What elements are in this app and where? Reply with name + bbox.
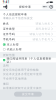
button[interactable]: 代他人办理 bbox=[0, 47, 56, 52]
staticText: 请输入手机号 bbox=[32, 38, 50, 41]
staticText: 仅在本次业务办理过程中使用 bbox=[3, 73, 42, 76]
staticText: 详情请查阅协议条款 bbox=[3, 95, 30, 98]
button[interactable]: 本人办理 bbox=[0, 42, 56, 47]
staticText: 手机号码 bbox=[3, 38, 15, 41]
staticText: 姓名 bbox=[3, 22, 9, 25]
staticText: 不会用于其他用途 bbox=[3, 77, 27, 80]
staticText: 请确认以下信息后提交 bbox=[3, 16, 33, 20]
staticText: 撤回 bbox=[3, 82, 9, 85]
staticText: 请输入证件号码 bbox=[29, 32, 50, 36]
button[interactable]: 证件号码 bbox=[0, 32, 56, 37]
button[interactable]: Close bbox=[49, 5, 53, 8]
button[interactable]: 姓名 bbox=[0, 21, 56, 26]
button[interactable]: More options bbox=[43, 5, 47, 8]
staticText: 9:41 bbox=[3, 0, 10, 4]
staticText: 撤回后不影响此前的处理 bbox=[3, 91, 36, 94]
staticText: 提交后信息将用于身份核验 bbox=[3, 68, 39, 72]
staticText: 如需撤回授权可在设置中操作 bbox=[3, 86, 42, 90]
button[interactable]: Share bbox=[2, 4, 8, 9]
staticText: 证件号码 bbox=[3, 32, 15, 36]
button[interactable]: 手机号码 bbox=[0, 37, 56, 42]
staticText: 授权申请 bbox=[19, 5, 31, 8]
staticText: 说明 bbox=[3, 64, 9, 67]
staticText: 本人办理 bbox=[7, 43, 19, 46]
button[interactable]: 证件类型 bbox=[0, 26, 56, 31]
staticText: 证件类型 bbox=[3, 27, 15, 30]
staticText: 授权范围 bbox=[3, 53, 15, 57]
staticText: 代他人办理 bbox=[7, 48, 22, 51]
staticText: 个人信息授权申请 bbox=[3, 13, 27, 16]
button[interactable]: 提交申请 bbox=[14, 92, 42, 97]
button[interactable]: 我已阅读并同意《个人信息授权协议》 bbox=[0, 58, 56, 62]
staticText: 我已阅读并同意《个人信息授权协议》 bbox=[6, 57, 51, 63]
staticText: 请输入姓名 bbox=[35, 22, 50, 25]
staticText: 居民身份证 bbox=[35, 27, 50, 30]
staticText: 提交申请 bbox=[22, 93, 34, 96]
